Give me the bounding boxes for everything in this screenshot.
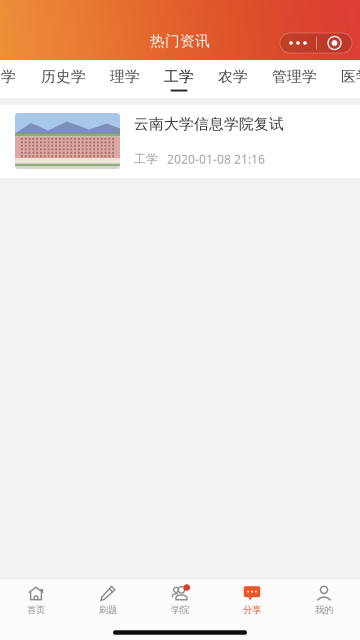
button[interactable]: 管理学 [272, 62, 317, 95]
button[interactable]: 工学 [164, 62, 194, 95]
staticText: 工学 [164, 67, 194, 85]
button[interactable]: 学院 [144, 581, 216, 623]
button[interactable]: 分享 [216, 581, 288, 623]
button[interactable]: 医学 [341, 62, 360, 95]
staticText: 云南大学信息学院复试 [134, 115, 284, 133]
staticText: 2020-01-08 21:16 [167, 151, 265, 167]
button[interactable]: More options [280, 33, 352, 53]
staticText: 我的 [315, 604, 333, 616]
button[interactable]: 我的 [288, 581, 360, 623]
staticText: 管理学 [272, 67, 317, 85]
staticText: 理学 [110, 67, 140, 85]
staticText: 刷题 [99, 604, 117, 616]
button[interactable]: 首页 [0, 581, 72, 623]
staticText: 热门资讯 [150, 32, 210, 50]
button[interactable]: 刷题 [72, 581, 144, 623]
staticText: 学 [1, 67, 16, 85]
staticText: 农学 [218, 67, 248, 85]
button[interactable]: 云南大学信息学院复试 [0, 105, 360, 178]
staticText: 工学 [134, 152, 158, 166]
staticText: 历史学 [41, 67, 86, 85]
staticText: 分享 [243, 604, 261, 616]
button[interactable]: 农学 [218, 62, 248, 95]
button[interactable]: 历史学 [41, 62, 86, 95]
button[interactable]: 学 [0, 62, 17, 95]
staticText: 学院 [171, 604, 189, 616]
staticText: 首页 [27, 604, 45, 616]
button[interactable]: 理学 [110, 62, 140, 95]
staticText: 医学 [341, 67, 360, 85]
